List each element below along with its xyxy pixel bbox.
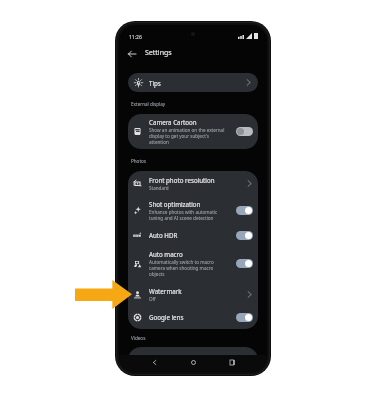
staticText: Tips <box>149 79 161 87</box>
button[interactable]: Toggle <box>236 127 253 136</box>
button[interactable]: Back <box>147 355 161 369</box>
staticText: 11:26 <box>129 34 142 41</box>
staticText: Automatically switch to macro camera whe… <box>149 259 228 277</box>
button[interactable]: Home <box>186 355 200 369</box>
staticText: Off <box>149 296 156 302</box>
button[interactable]: Toggle <box>236 259 253 268</box>
button[interactable]: Tips <box>128 73 258 92</box>
button[interactable]: Front photo resolution <box>128 171 258 195</box>
staticText: Photos <box>131 158 147 164</box>
staticText: Standard <box>149 185 169 191</box>
button[interactable]: Auto HDR <box>128 225 258 245</box>
button[interactable]: Camera Cartoon <box>128 114 258 149</box>
button[interactable]: Recents <box>225 355 239 369</box>
button[interactable]: Toggle <box>236 231 253 240</box>
staticText: Auto macro <box>149 250 183 258</box>
staticText: Camera Cartoon <box>149 118 197 126</box>
staticText: Auto HDR <box>149 231 178 239</box>
button[interactable]: Toggle <box>236 313 253 322</box>
staticText: Shot optimization <box>149 200 201 208</box>
button[interactable]: Toggle <box>236 206 253 215</box>
button[interactable]: Auto macro <box>128 245 258 282</box>
staticText: Google lens <box>149 313 184 321</box>
button[interactable]: Watermark <box>128 282 258 307</box>
button[interactable]: Google lens <box>128 307 258 327</box>
staticText: Watermark <box>149 287 182 295</box>
staticText: Videos <box>131 335 146 341</box>
staticText: External display <box>131 101 166 107</box>
staticText: Show an animation on the external displa… <box>149 127 228 145</box>
staticText: Enhance photos with automatic tuning and… <box>149 209 228 221</box>
staticText: Front photo resolution <box>149 176 215 184</box>
staticText: Settings <box>145 48 172 58</box>
button[interactable]: Back <box>124 46 139 61</box>
button[interactable]: Shot optimization <box>128 195 258 225</box>
other: Pointer arrow <box>75 280 132 309</box>
